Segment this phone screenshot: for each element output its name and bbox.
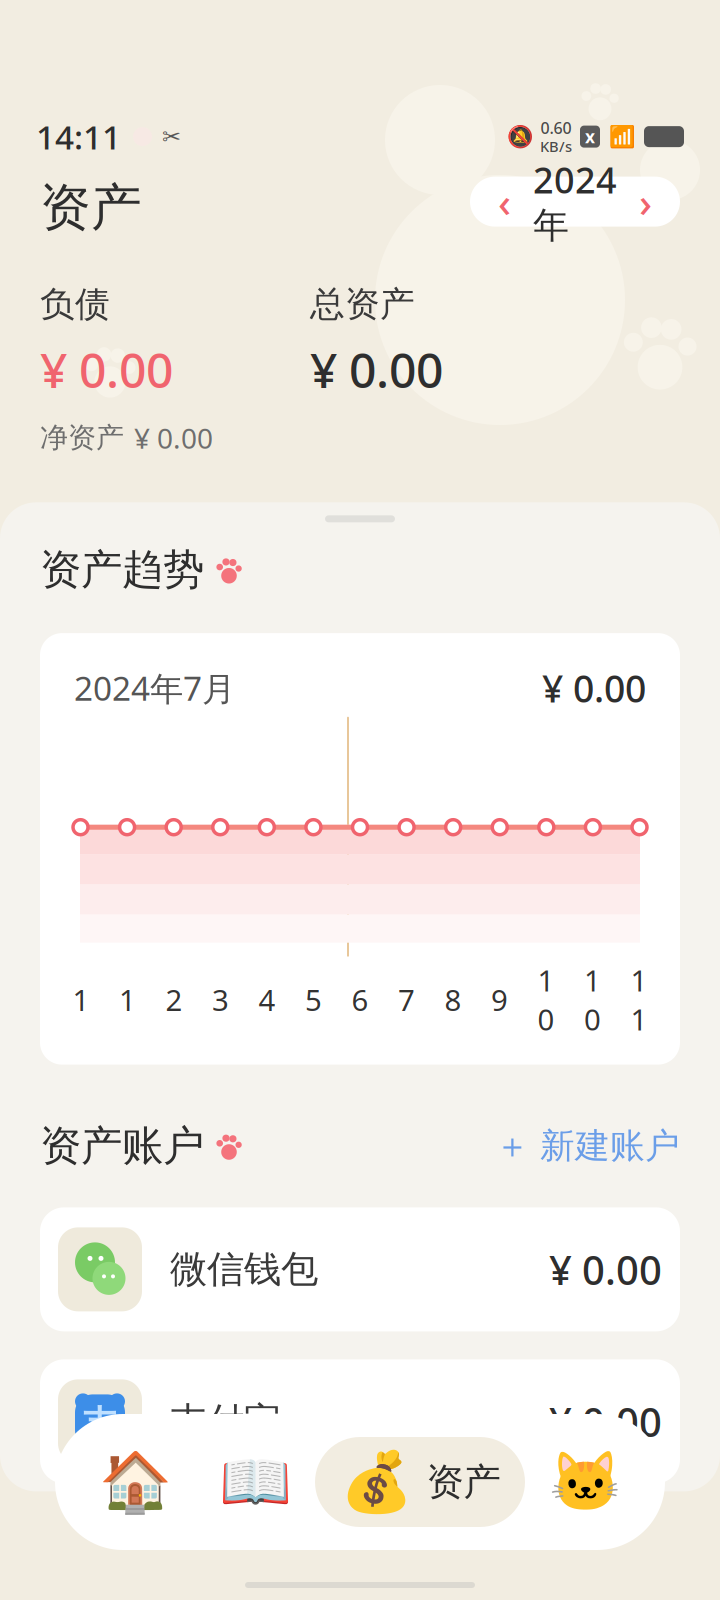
staticText: ¥ 0.00 [310, 337, 443, 401]
staticText: › [639, 175, 652, 228]
staticText: 总资产 [310, 283, 415, 325]
button[interactable]: 账本 [195, 1422, 315, 1542]
staticText: 9 [491, 980, 508, 1019]
staticText: 6 [351, 980, 368, 1019]
staticText: ＋ 新建账户 [495, 1125, 680, 1167]
staticText: 5 [305, 980, 322, 1019]
staticText: 💰 [339, 1448, 412, 1515]
staticText: 2024年7月 [74, 666, 235, 710]
staticText: 2 [165, 980, 182, 1019]
staticText: 🏠 [98, 1448, 171, 1515]
staticText: ¥ 0.00 [542, 663, 646, 713]
button[interactable]: 微信钱包 [40, 1207, 680, 1331]
staticText: 资产 [426, 1459, 500, 1505]
button[interactable]: 支 [40, 1359, 680, 1483]
staticText: ‹ [498, 175, 511, 228]
staticText: 🐱 [548, 1448, 621, 1515]
button[interactable]: ‹ [470, 177, 680, 227]
staticText: 3 [212, 980, 229, 1019]
staticText: ¥ 0.00 [549, 1395, 662, 1448]
staticText: 14:11 [36, 114, 121, 159]
staticText: 11 [630, 961, 647, 1039]
button[interactable]: 首页 [75, 1422, 195, 1542]
staticText: 🔕 [507, 124, 534, 149]
staticText: 📖 [218, 1448, 291, 1515]
staticText: 微信钱包 [170, 1246, 318, 1292]
button[interactable]: ＋ 新建账户 [495, 1125, 680, 1167]
staticText: 4 [258, 980, 275, 1019]
staticText: ✂ [162, 124, 181, 149]
staticText: 资产账户 [40, 1121, 204, 1171]
staticText: 1 [119, 980, 136, 1019]
staticText: ¥ 0.00 [549, 1243, 662, 1296]
button[interactable]: 💰 [315, 1437, 525, 1527]
staticText: 支 [82, 1402, 117, 1445]
staticText: 10 [537, 961, 554, 1039]
staticText: 1 [72, 980, 89, 1019]
staticText: 支付宝 [170, 1398, 281, 1444]
staticText: 资产 [40, 177, 142, 239]
staticText: 资产趋势 [40, 544, 204, 595]
staticText: ¥ 0.00 [134, 419, 213, 456]
staticText: 2024年 [533, 156, 617, 248]
staticText: 负债 [40, 283, 110, 325]
staticText: KB/s [540, 136, 572, 156]
staticText: 8 [444, 980, 461, 1019]
staticText: x [585, 125, 595, 148]
staticText: 净资产 [40, 421, 124, 455]
button[interactable]: 我的 [525, 1422, 645, 1542]
staticText: 📶 [609, 124, 636, 149]
staticText: 0.60 [540, 117, 571, 138]
staticText: 7 [398, 980, 415, 1019]
staticText: 10 [584, 961, 601, 1039]
staticText: ¥ 0.00 [40, 337, 173, 401]
